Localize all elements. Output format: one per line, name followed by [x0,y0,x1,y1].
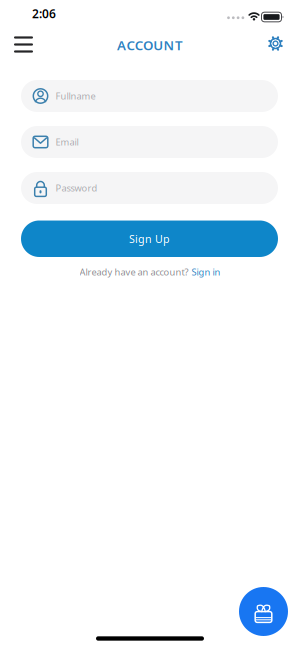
button[interactable]: Sign Up [21,220,278,257]
staticText: ACCOUNT [117,36,183,54]
button[interactable]: Settings [262,30,288,56]
staticText: Sign Up [129,232,170,246]
staticText: Sign in [191,266,220,278]
button[interactable]: Menu [10,31,37,57]
button[interactable]: Gift [239,587,288,636]
button[interactable]: Sign in [191,266,220,278]
staticText: 2:06 [32,5,56,21]
staticText: Password [55,182,97,194]
button[interactable]: Fullname [21,80,278,112]
button[interactable]: Password [21,172,278,204]
staticText: Fullname [55,90,95,102]
staticText: Email [55,136,78,148]
button[interactable]: Email [21,126,278,158]
staticText: Already have an account? [79,266,188,278]
